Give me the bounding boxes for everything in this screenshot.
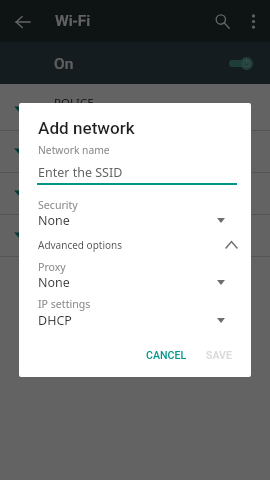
staticText: None — [38, 274, 70, 291]
staticText: Advanced options — [38, 238, 123, 252]
staticText: POLICE — [54, 95, 94, 111]
staticText: DHCP — [38, 312, 72, 329]
button[interactable]: More options — [239, 7, 267, 35]
staticText: IP settings — [38, 297, 91, 311]
staticText: CANCEL — [146, 349, 187, 361]
staticText: Secured — [54, 238, 90, 251]
staticText: Proxy — [38, 260, 66, 274]
staticText: Guest-WiFi — [54, 221, 112, 237]
staticText: Add network — [38, 118, 135, 138]
staticText: SAVE — [206, 349, 232, 361]
staticText: AndroidAP — [54, 137, 112, 153]
button[interactable]: Search — [207, 6, 237, 36]
button[interactable]: Advanced options — [19, 233, 251, 257]
staticText: Connected — [54, 112, 103, 125]
staticText: Security — [38, 198, 78, 212]
button[interactable]: Guest-WiFi — [0, 215, 270, 256]
staticText: None — [38, 212, 70, 229]
staticText: Network name — [38, 143, 110, 157]
button[interactable]: NETGEAR58 — [0, 173, 270, 214]
button[interactable]: POLICE — [0, 89, 270, 130]
staticText: NETGEAR58 — [54, 179, 118, 195]
button[interactable]: AndroidAP — [0, 131, 270, 172]
button[interactable]: On — [0, 42, 270, 84]
staticText: On — [54, 55, 74, 73]
button[interactable]: SAVE — [198, 340, 240, 370]
staticText: Wi-Fi — [55, 12, 91, 30]
staticText: Enter the SSID — [38, 164, 123, 181]
staticText: Secured — [54, 196, 90, 209]
button[interactable]: Back — [7, 6, 38, 37]
button[interactable]: CANCEL — [138, 340, 195, 370]
